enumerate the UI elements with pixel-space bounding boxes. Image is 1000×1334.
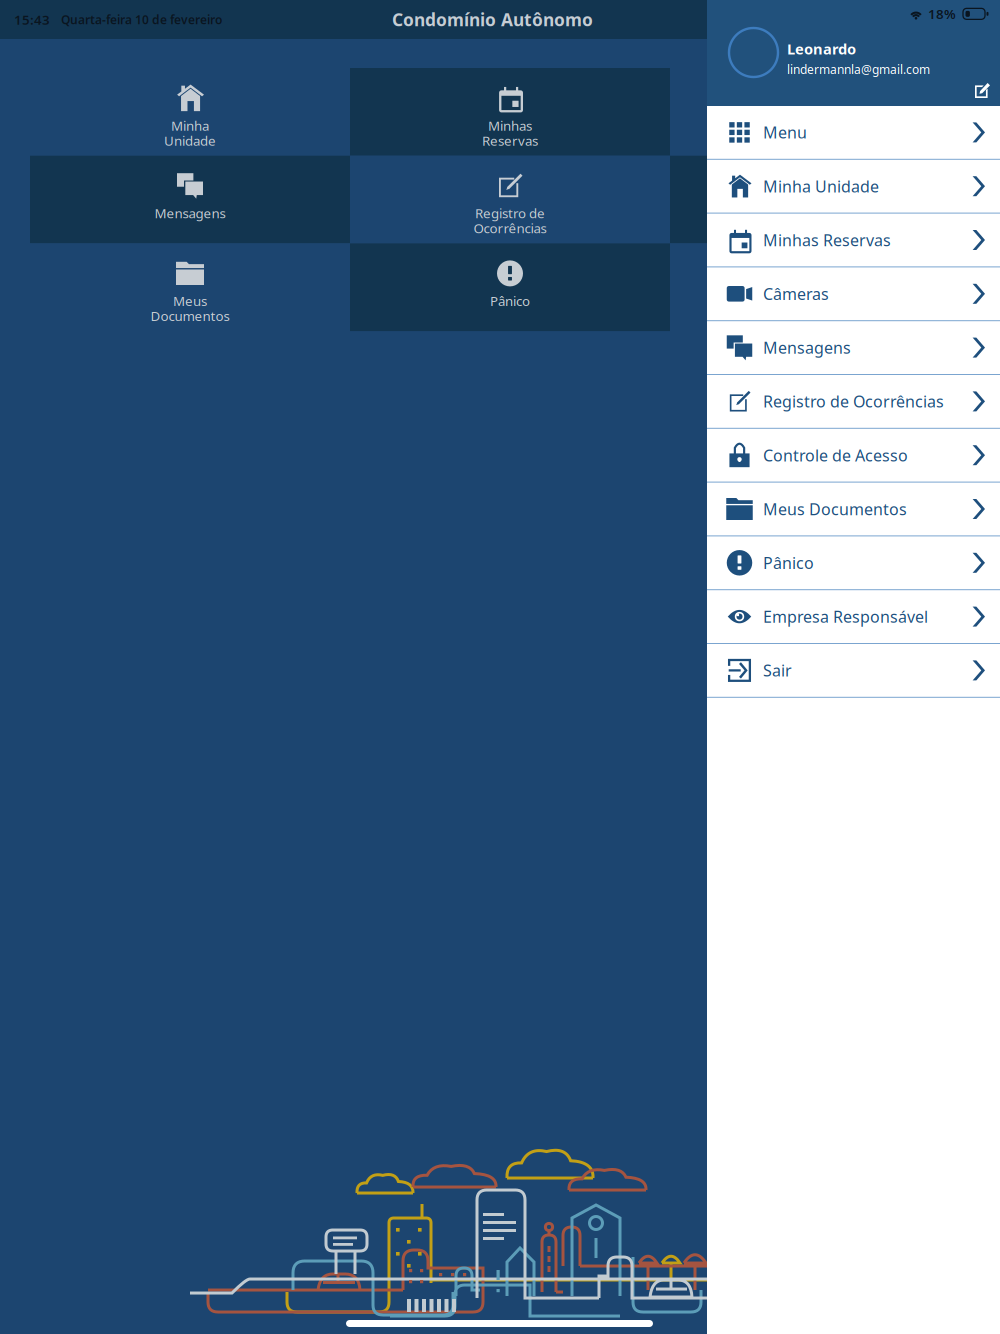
staticText: Quarta-feira 10 de fevereiro <box>61 11 222 27</box>
staticText: Registro de Ocorrências <box>763 391 944 412</box>
button[interactable]: Meus Documentos <box>707 483 1000 536</box>
staticText: Minha <box>171 117 209 134</box>
button[interactable]: Pânico <box>350 243 670 331</box>
staticText: Minhas <box>488 117 532 134</box>
button[interactable]: Editar perfil <box>969 77 996 104</box>
staticText: Controle de <box>794 204 866 222</box>
button[interactable]: Registro de <box>350 156 670 243</box>
staticText: Unidade <box>164 132 216 149</box>
button[interactable]: Controle de Acesso <box>707 429 1000 483</box>
button[interactable]: Mensagens <box>707 321 1000 375</box>
staticText: Ocorrências <box>473 219 546 237</box>
staticText: Leonardo <box>787 39 856 58</box>
staticText: Mensagens <box>154 204 225 222</box>
staticText: Reservas <box>482 132 538 149</box>
staticText: Condomínio Autônomo <box>392 8 593 31</box>
staticText: Menu <box>763 122 807 143</box>
button[interactable]: Controle de <box>670 156 990 243</box>
button[interactable]: Pânico <box>707 536 1000 590</box>
button[interactable]: Registro de Ocorrências <box>707 375 1000 429</box>
staticText: Mensagens <box>763 337 851 358</box>
staticText: Documentos <box>150 307 229 325</box>
button[interactable]: Minha Unidade <box>707 160 1000 214</box>
staticText: lindermannla@gmail.com <box>787 61 930 77</box>
staticText: Minhas Reservas <box>763 229 891 251</box>
staticText: Câmeras <box>803 117 856 134</box>
staticText: Registro de <box>475 204 545 222</box>
button[interactable]: Sair <box>707 644 1000 698</box>
button[interactable]: Câmeras <box>670 68 990 156</box>
staticText: Pânico <box>490 292 530 310</box>
staticText: 15:43 <box>14 11 50 28</box>
staticText: Responsável <box>791 307 868 325</box>
staticText: Controle de Acesso <box>763 445 908 466</box>
button[interactable]: Mensagens <box>30 156 350 243</box>
staticText: Empresa Responsável <box>763 606 928 627</box>
staticText: Acesso <box>808 219 851 237</box>
button[interactable]: Menu <box>707 106 1000 160</box>
button[interactable]: Empresa Responsável <box>707 590 1000 644</box>
staticText: Empresa <box>803 292 856 310</box>
staticText: 18% <box>928 5 956 23</box>
button[interactable]: Minha <box>30 68 350 156</box>
staticText: Sair <box>763 660 792 681</box>
button[interactable]: Minhas <box>350 68 670 156</box>
button[interactable]: Empresa <box>670 243 990 331</box>
button[interactable]: Câmeras <box>707 267 1000 321</box>
staticText: Meus <box>173 292 207 310</box>
button[interactable]: Minhas Reservas <box>707 214 1000 267</box>
button[interactable]: Meus <box>30 243 350 331</box>
staticText: Minha Unidade <box>763 176 879 197</box>
staticText: Câmeras <box>763 283 829 304</box>
staticText: Meus Documentos <box>763 498 907 520</box>
staticText: Pânico <box>763 552 814 573</box>
